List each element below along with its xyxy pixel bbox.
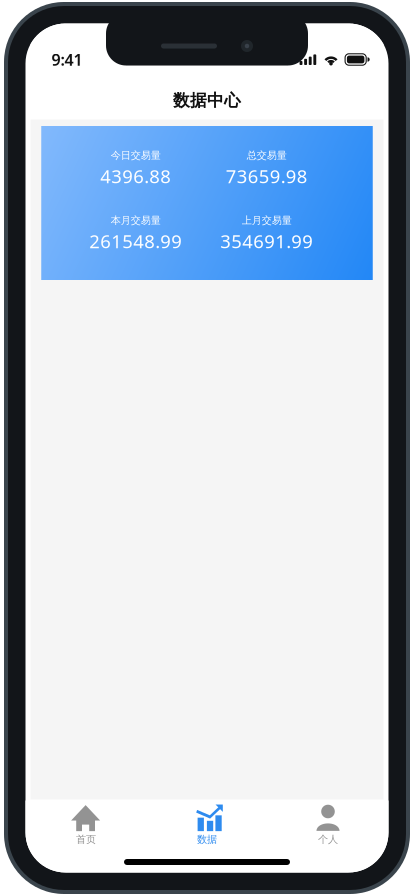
staticText: 总交易量 (247, 149, 287, 162)
staticText: 数据 (197, 833, 217, 846)
staticText: 261548.99 (89, 228, 182, 254)
staticText: 4396.88 (100, 163, 171, 189)
button[interactable]: 数据 (146, 800, 267, 858)
staticText: 354691.99 (220, 228, 313, 254)
button[interactable]: 首页 (25, 800, 146, 858)
staticText: 9:41 (51, 49, 82, 70)
staticText: 73659.98 (226, 163, 308, 189)
staticText: 首页 (76, 833, 96, 846)
button[interactable]: 个人 (267, 800, 388, 858)
staticText: 今日交易量 (111, 149, 161, 162)
staticText: 个人 (318, 833, 338, 846)
staticText: 数据中心 (173, 90, 241, 111)
staticText: 上月交易量 (242, 214, 292, 227)
staticText: 本月交易量 (111, 214, 161, 227)
